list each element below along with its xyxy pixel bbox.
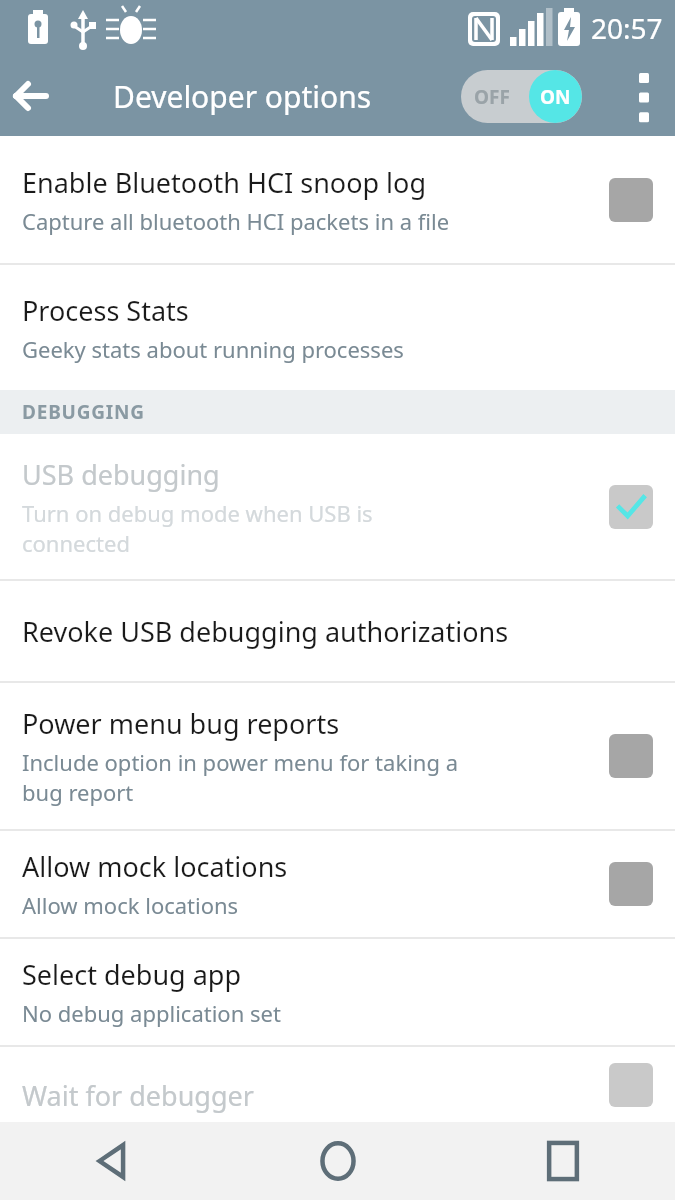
button[interactable]: Home — [225, 1122, 450, 1200]
staticText: Include option in power menu for taking … — [22, 747, 458, 807]
staticText: Power menu bug reports — [22, 705, 340, 742]
staticText: Turn on debug mode when USB is connected — [22, 498, 373, 558]
staticText: Capture all bluetooth HCI packets in a f… — [22, 206, 450, 236]
staticText: Allow mock locations — [22, 890, 239, 920]
staticText: No debug application set — [22, 998, 281, 1028]
staticText: 20:57 — [591, 9, 663, 47]
button[interactable]: Unchecked — [609, 1063, 653, 1107]
button[interactable]: More options — [613, 56, 675, 136]
button[interactable]: Checked — [609, 485, 653, 529]
button[interactable]: Back — [0, 1122, 225, 1200]
staticText: OFF — [474, 84, 510, 110]
staticText: ON — [540, 84, 571, 110]
staticText: Developer options — [113, 76, 372, 117]
staticText: Select debug app — [22, 956, 242, 993]
staticText: USB debugging — [22, 456, 220, 493]
button[interactable]: Allow mock locations — [0, 831, 675, 937]
staticText: DEBUGGING — [22, 399, 145, 425]
button[interactable]: Enable Bluetooth HCI snoop log — [0, 136, 675, 263]
staticText: Revoke USB debugging authorizations — [22, 613, 509, 650]
staticText: Geeky stats about running processes — [22, 334, 404, 364]
button[interactable]: USB debugging — [0, 434, 675, 579]
staticText: Enable Bluetooth HCI snoop log — [22, 164, 427, 201]
button[interactable]: Revoke USB debugging authorizations — [0, 581, 675, 681]
button[interactable]: Unchecked — [609, 862, 653, 906]
button[interactable]: Back — [0, 65, 62, 127]
staticText: Process Stats — [22, 292, 189, 329]
button[interactable]: Unchecked — [609, 734, 653, 778]
button[interactable]: Wait for debugger — [0, 1047, 675, 1122]
staticText: Wait for debugger — [22, 1077, 254, 1114]
button[interactable]: Unchecked — [609, 178, 653, 222]
button[interactable]: OFF — [461, 70, 582, 123]
staticText: Allow mock locations — [22, 848, 288, 885]
button[interactable]: Power menu bug reports — [0, 683, 675, 829]
button[interactable]: Recents — [450, 1122, 675, 1200]
button[interactable]: Process Stats — [0, 265, 675, 390]
button[interactable]: Select debug app — [0, 939, 675, 1045]
